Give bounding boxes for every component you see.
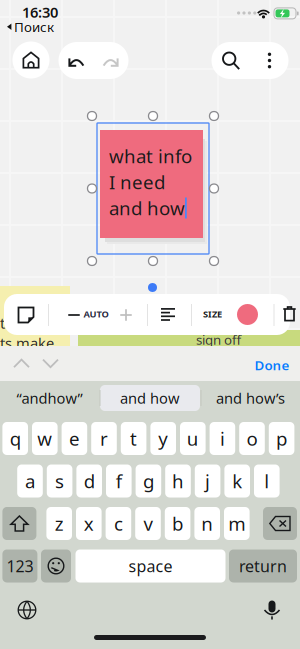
button[interactable]: space — [75, 549, 225, 582]
staticText: t — [130, 426, 137, 451]
button[interactable]: y — [150, 422, 176, 455]
button[interactable]: m — [224, 507, 250, 540]
button[interactable]: Note colour — [237, 304, 258, 325]
staticText: n — [201, 511, 213, 536]
staticText: u — [187, 426, 199, 451]
staticText: I need — [109, 170, 165, 194]
button[interactable]: Decrease text size — [64, 305, 84, 325]
staticText: c — [114, 511, 123, 536]
staticText: space — [128, 555, 172, 577]
button[interactable]: Shift — [2, 507, 36, 540]
staticText: 123 — [6, 555, 33, 577]
staticText: and how — [120, 388, 180, 408]
button[interactable]: Done — [252, 355, 292, 375]
staticText: m — [228, 511, 245, 536]
button[interactable]: Delete note — [283, 306, 296, 322]
button[interactable]: o — [239, 422, 265, 455]
staticText: p — [276, 426, 287, 451]
staticText: h — [172, 469, 184, 493]
button[interactable]: f — [106, 464, 132, 497]
button[interactable]: Redo — [93, 42, 128, 79]
button[interactable]: p — [269, 422, 294, 455]
button[interactable]: r — [91, 422, 117, 455]
staticText: o — [246, 426, 257, 451]
button[interactable]: Emoji — [41, 549, 71, 582]
staticText: r — [100, 426, 108, 451]
button[interactable]: Delete — [263, 507, 297, 540]
staticText: v — [143, 511, 152, 536]
staticText: b — [172, 511, 183, 536]
staticText: s — [55, 469, 64, 493]
staticText: SIZE — [203, 308, 222, 320]
button[interactable]: and how — [99, 381, 201, 415]
button[interactable]: e — [62, 422, 87, 455]
button[interactable]: Next field — [34, 352, 67, 375]
staticText: l — [264, 469, 269, 493]
staticText: and how’s — [216, 388, 285, 408]
staticText: Done — [254, 356, 289, 374]
staticText: x — [84, 511, 94, 536]
button[interactable]: Dictate — [253, 595, 291, 625]
button[interactable]: h — [165, 464, 191, 497]
button[interactable]: a — [17, 464, 43, 497]
button[interactable]: t — [121, 422, 146, 455]
button[interactable]: Next keyboard — [8, 595, 46, 625]
button[interactable]: i — [210, 422, 235, 455]
staticText: sign off — [196, 331, 241, 348]
button[interactable]: More options — [250, 42, 288, 79]
button[interactable]: “andhow” — [0, 381, 99, 415]
button[interactable]: Home — [12, 41, 49, 78]
button[interactable]: n — [194, 507, 220, 540]
staticText: d — [84, 469, 95, 493]
staticText: i — [220, 426, 225, 451]
staticText: g — [143, 469, 154, 493]
button[interactable]: 123 — [2, 549, 37, 582]
button[interactable]: Search — [211, 42, 250, 79]
button[interactable]: z — [46, 507, 72, 540]
staticText: z — [55, 511, 64, 536]
staticText: f — [116, 469, 122, 493]
staticText: t — [0, 313, 5, 333]
staticText: ts make — [0, 333, 54, 353]
staticText: y — [158, 426, 168, 451]
button[interactable]: d — [76, 464, 102, 497]
staticText: w — [37, 426, 52, 451]
staticText: and how — [109, 196, 185, 220]
button[interactable]: Increase text size — [116, 305, 136, 325]
button[interactable]: and how’s — [201, 381, 300, 415]
button[interactable]: k — [224, 464, 250, 497]
staticText: q — [10, 426, 21, 451]
button[interactable]: Text alignment — [161, 308, 175, 321]
staticText: Поиск — [14, 18, 54, 36]
button[interactable]: return — [229, 549, 297, 582]
button[interactable]: q — [2, 422, 28, 455]
button[interactable]: Note style — [17, 306, 35, 324]
button[interactable]: g — [136, 464, 161, 497]
button[interactable]: v — [135, 507, 161, 540]
staticText: return — [239, 555, 287, 577]
staticText: k — [232, 469, 242, 493]
staticText: AUTO — [83, 308, 108, 320]
button[interactable]: u — [180, 422, 206, 455]
staticText: e — [69, 426, 80, 451]
staticText: what info — [109, 144, 192, 168]
button[interactable]: Previous field — [5, 352, 38, 375]
button[interactable]: s — [47, 464, 72, 497]
staticText: j — [205, 469, 210, 493]
staticText: 16:30 — [22, 2, 58, 22]
button[interactable]: w — [32, 422, 58, 455]
button[interactable]: x — [76, 507, 102, 540]
button[interactable]: l — [254, 464, 280, 497]
staticText: “andhow” — [16, 388, 82, 408]
staticText: a — [25, 469, 35, 493]
button[interactable]: c — [106, 507, 131, 540]
button[interactable]: j — [195, 464, 220, 497]
button[interactable]: b — [165, 507, 190, 540]
button[interactable]: Undo — [58, 42, 93, 79]
